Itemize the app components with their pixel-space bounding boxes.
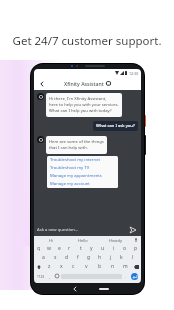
button[interactable]: m [119, 262, 132, 271]
button[interactable]: Home [98, 285, 109, 293]
button[interactable]: Back [37, 79, 46, 88]
staticText: Xfinity Assistant [64, 80, 104, 87]
button[interactable]: v [80, 262, 93, 271]
staticText: l [132, 254, 134, 261]
staticText: m [123, 263, 128, 270]
button[interactable]: Back [66, 284, 84, 293]
button[interactable]: What can I ask you? [96, 123, 135, 129]
staticText: Hi [49, 238, 53, 243]
staticText: p [134, 245, 138, 252]
staticText: Troubleshoot my internet [50, 157, 101, 163]
staticText: r [68, 245, 71, 252]
staticText: Manage my appointments [50, 173, 102, 179]
staticText: Hi there, I'm Xfinity Assistant, [49, 96, 107, 102]
button[interactable]: r [64, 244, 75, 253]
staticText: n [111, 263, 115, 270]
staticText: . [125, 274, 127, 279]
button[interactable]: Howdy [99, 236, 131, 244]
staticText: Get 24/7 customer support. [8, 33, 166, 49]
staticText: u [101, 245, 105, 252]
button[interactable]: g [83, 253, 94, 262]
staticText: ?123 [37, 274, 45, 279]
staticText: k [120, 254, 123, 261]
button[interactable]: f [72, 253, 83, 262]
button[interactable]: Hi [34, 236, 67, 244]
button[interactable]: n [106, 262, 119, 271]
button[interactable]: e [54, 244, 64, 253]
button[interactable]: l [127, 253, 138, 262]
button[interactable]: b [93, 262, 106, 271]
staticText: i [113, 245, 115, 252]
staticText: h [98, 254, 102, 261]
button[interactable]: q [34, 244, 44, 253]
button[interactable]: Backspace [132, 262, 141, 271]
button[interactable]: Emoji [53, 271, 61, 281]
button[interactable]: i [108, 244, 119, 253]
button[interactable]: d [61, 253, 72, 262]
staticText: w [47, 245, 51, 252]
button[interactable]: s [49, 253, 61, 262]
button[interactable]: Ask a new question... [37, 227, 128, 233]
staticText: q [37, 245, 41, 252]
staticText: Here are some of the things [49, 139, 104, 145]
staticText: o [123, 245, 127, 252]
button[interactable]: w [44, 244, 54, 253]
button[interactable]: t [75, 244, 86, 253]
button[interactable]: j [105, 253, 116, 262]
staticText: Manage my account [50, 181, 90, 187]
staticText: e [58, 245, 61, 252]
button[interactable]: y [86, 244, 97, 253]
staticText: c [72, 263, 75, 270]
button[interactable]: o [119, 244, 130, 253]
button[interactable]: Manage my appointments [47, 172, 118, 180]
staticText: Hello [78, 238, 88, 243]
staticText: g [87, 254, 91, 261]
button[interactable]: Shift [34, 262, 43, 271]
button[interactable]: Enter [129, 271, 140, 281]
button[interactable]: Send [128, 225, 138, 235]
button[interactable]: u [97, 244, 108, 253]
button[interactable]: Voice input [131, 236, 141, 244]
staticText: Troubleshoot my TV [50, 165, 90, 171]
button[interactable]: Manage my account [47, 180, 118, 188]
button[interactable]: x [55, 262, 67, 271]
staticText: Howdy [109, 238, 122, 243]
staticText: b [98, 263, 102, 270]
button[interactable]: Troubleshoot my TV [47, 164, 118, 172]
staticText: What can I ask you? [96, 123, 135, 129]
button[interactable]: ?123 [35, 271, 46, 281]
staticText: z [48, 263, 51, 270]
button[interactable]: a [37, 253, 49, 262]
button[interactable]: k [116, 253, 127, 262]
staticText: y [90, 245, 93, 252]
staticText: 12:30 [129, 71, 139, 76]
staticText: t [80, 245, 82, 252]
button[interactable]: Troubleshoot my internet [47, 156, 118, 164]
staticText: s [54, 254, 57, 261]
staticText: f [77, 254, 79, 261]
button[interactable]: c [67, 262, 80, 271]
staticText: that I can help with. [49, 145, 88, 151]
button[interactable]: , [46, 271, 53, 281]
staticText: d [65, 254, 69, 261]
button[interactable]: h [94, 253, 105, 262]
staticText: x [60, 263, 63, 270]
staticText: What can I help you with today? [49, 108, 112, 114]
staticText: j [110, 254, 112, 261]
staticText: , [49, 274, 51, 279]
button[interactable]: z [43, 262, 55, 271]
staticText: a [42, 254, 45, 261]
button[interactable]: p [130, 244, 141, 253]
staticText: Ask a new question... [37, 227, 79, 233]
button[interactable]: Hello [67, 236, 99, 244]
staticText: v [85, 263, 88, 270]
staticText: here to help you with your services. [49, 102, 119, 108]
